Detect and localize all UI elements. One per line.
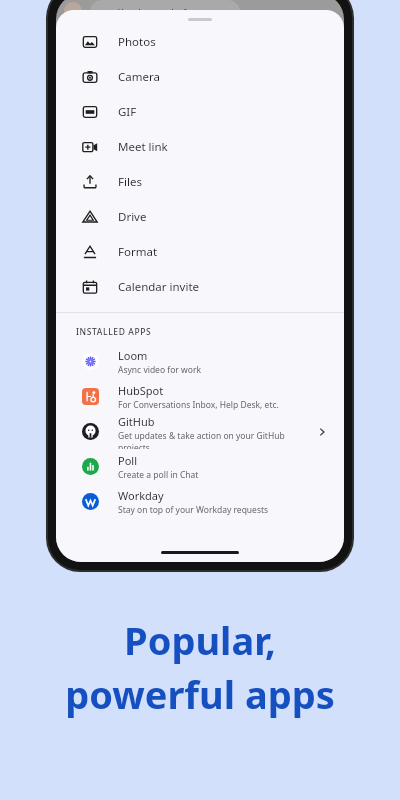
button[interactable]: Loom bbox=[56, 344, 344, 379]
staticText: Photos bbox=[118, 34, 156, 50]
staticText: Format bbox=[118, 244, 158, 260]
staticText: INSTALLED APPS bbox=[76, 326, 152, 338]
staticText: GitHub bbox=[118, 414, 155, 429]
staticText: GIF bbox=[118, 104, 137, 120]
staticText: Files bbox=[118, 174, 142, 190]
button[interactable]: Format bbox=[56, 234, 344, 269]
staticText: Stay on top of your Workday requests bbox=[118, 504, 269, 516]
staticText: Meet link bbox=[118, 139, 168, 155]
staticText: Poll bbox=[118, 453, 137, 468]
button[interactable]: Photos bbox=[56, 24, 344, 59]
button[interactable]: Poll bbox=[56, 449, 344, 484]
button[interactable]: Meet link bbox=[56, 129, 344, 164]
staticText: HubSpot bbox=[118, 383, 164, 398]
staticText: For Conversations Inbox, Help Desk, etc. bbox=[118, 399, 279, 411]
staticText: Get updates & take action on your GitHub… bbox=[118, 430, 314, 449]
button[interactable]: Drive bbox=[56, 199, 344, 234]
staticText: Drive bbox=[118, 209, 147, 225]
staticText: Loom bbox=[118, 348, 148, 363]
staticText: Calendar invite bbox=[118, 279, 200, 295]
staticText: Yes that works for me bbox=[118, 6, 212, 18]
staticText: Create a poll in Chat bbox=[118, 469, 199, 481]
button[interactable]: Camera bbox=[56, 59, 344, 94]
staticText: Popular, bbox=[124, 614, 276, 666]
staticText: Workday bbox=[118, 488, 164, 503]
button[interactable]: Calendar invite bbox=[56, 269, 344, 304]
staticText: Async video for work bbox=[118, 364, 201, 376]
button[interactable]: HubSpot bbox=[56, 379, 344, 414]
staticText: Camera bbox=[118, 69, 160, 85]
button[interactable]: GIF bbox=[56, 94, 344, 129]
button[interactable]: Files bbox=[56, 164, 344, 199]
other: Open GitHub bbox=[314, 424, 330, 440]
button[interactable]: Workday bbox=[56, 484, 344, 519]
button[interactable]: GitHub bbox=[56, 414, 344, 449]
staticText: powerful apps bbox=[65, 668, 335, 720]
